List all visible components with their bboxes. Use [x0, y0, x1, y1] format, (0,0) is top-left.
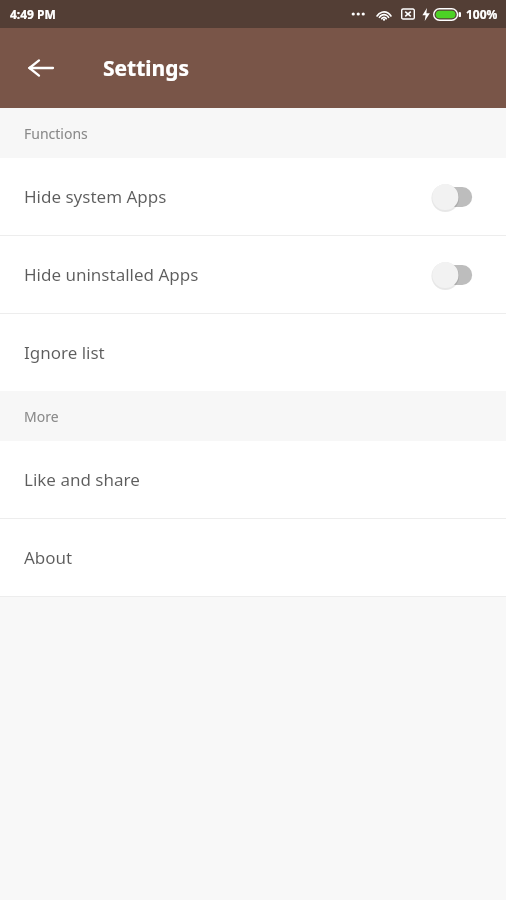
- button[interactable]: Toggle: [424, 256, 480, 294]
- button[interactable]: Hide system Apps: [0, 158, 506, 235]
- staticText: More: [24, 407, 59, 426]
- staticText: 100%: [466, 6, 498, 22]
- staticText: About: [24, 546, 73, 569]
- staticText: Hide system Apps: [24, 185, 167, 208]
- button[interactable]: Hide uninstalled Apps: [0, 236, 506, 313]
- button[interactable]: About: [0, 519, 506, 596]
- staticText: Hide uninstalled Apps: [24, 263, 199, 286]
- staticText: Ignore list: [24, 341, 105, 364]
- staticText: Settings: [103, 54, 190, 83]
- button[interactable]: Ignore list: [0, 314, 506, 391]
- staticText: Functions: [24, 124, 88, 143]
- button[interactable]: Back: [16, 44, 64, 92]
- staticText: 4:49 PM: [10, 6, 56, 22]
- button[interactable]: Like and share: [0, 441, 506, 518]
- staticText: Like and share: [24, 468, 140, 491]
- button[interactable]: Toggle: [424, 178, 480, 216]
